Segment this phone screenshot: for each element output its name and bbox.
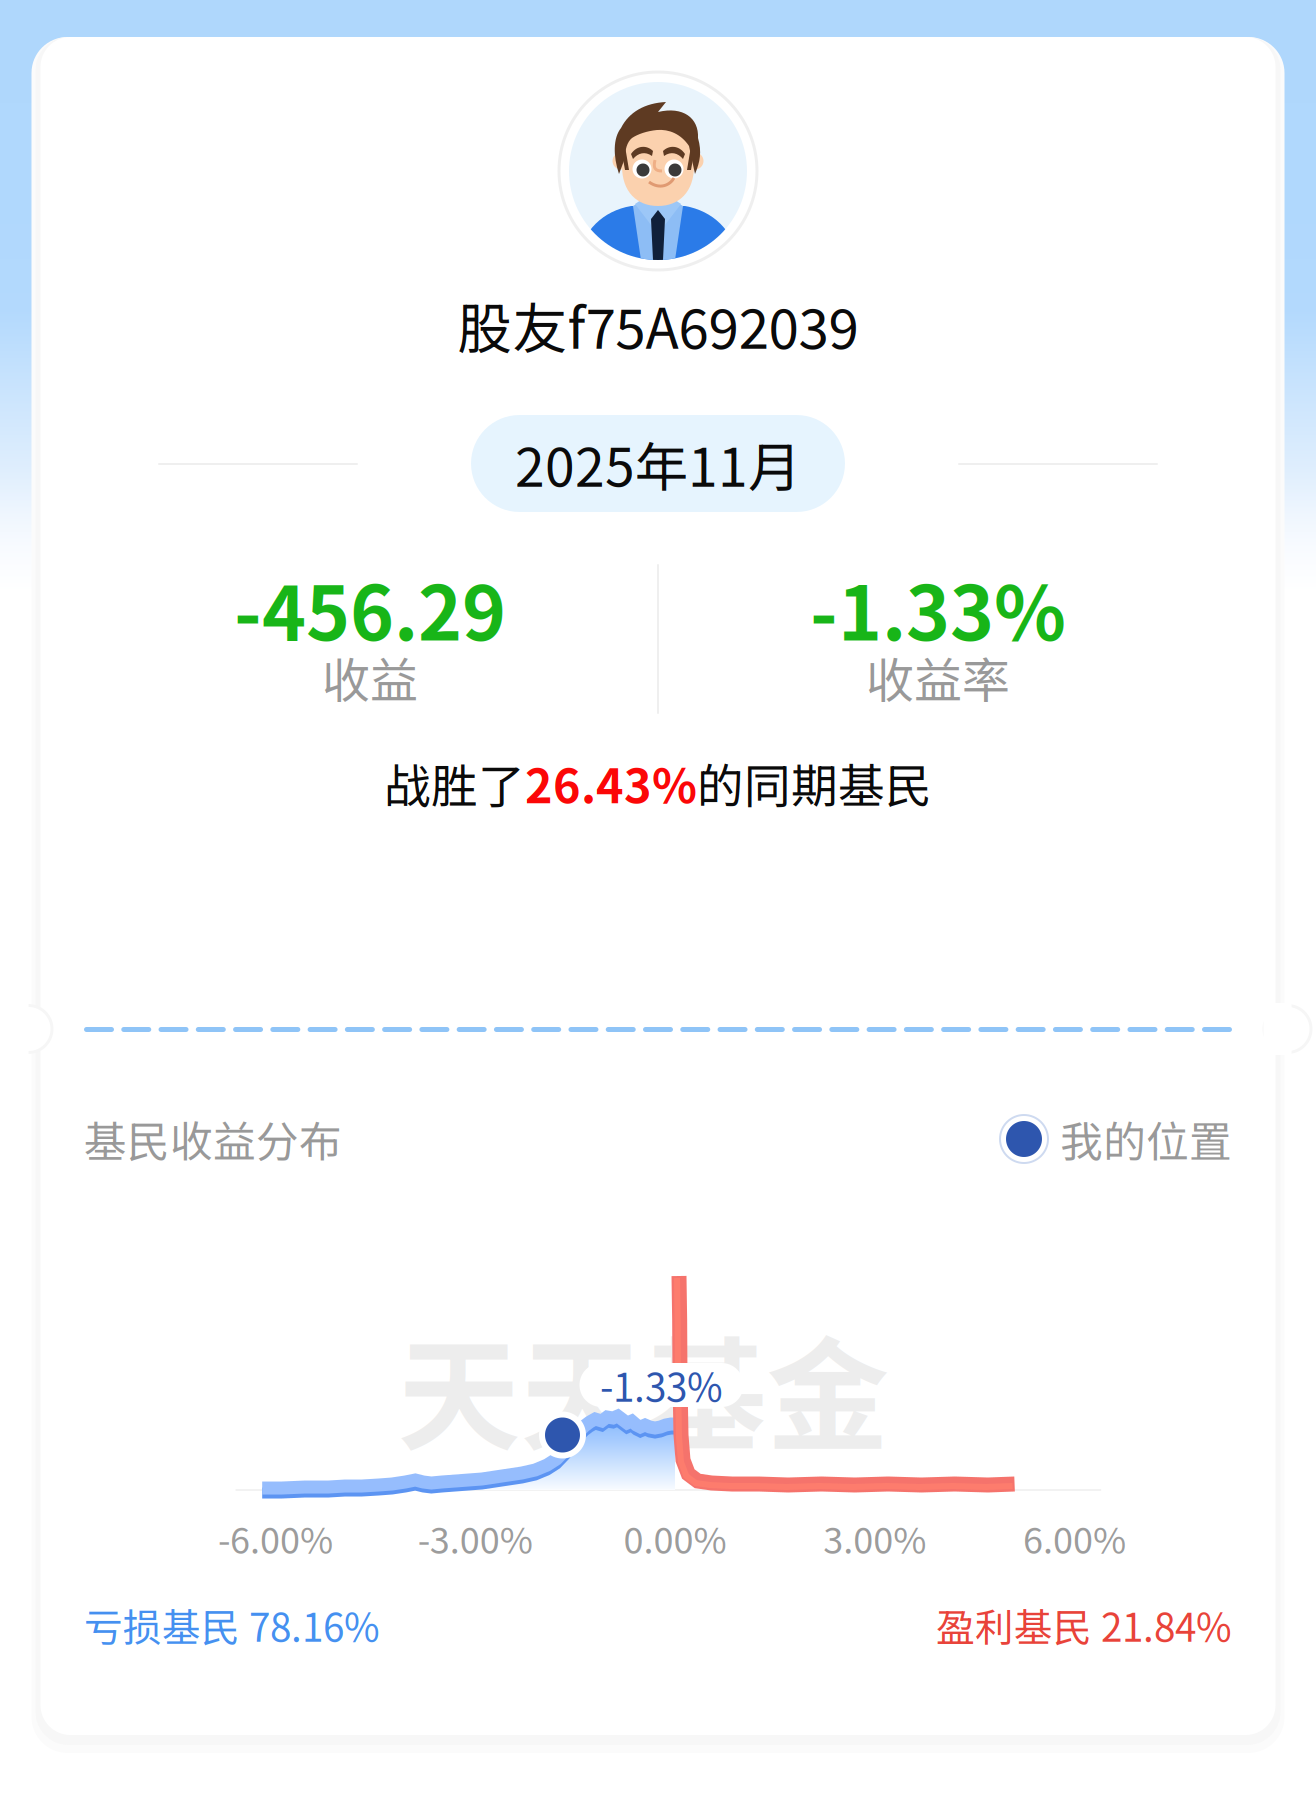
staticText: 3.00% bbox=[823, 1512, 926, 1564]
staticText: -3.00% bbox=[418, 1512, 533, 1564]
staticText: 盈利基民 21.84% bbox=[936, 1597, 1232, 1653]
staticText: 基民收益分布 bbox=[84, 1108, 342, 1170]
staticText: -1.33% bbox=[810, 554, 1066, 662]
staticText: 天天基金 bbox=[397, 1298, 889, 1476]
staticText: 的同期基民 bbox=[697, 749, 932, 817]
staticText: 26.43% bbox=[525, 749, 697, 817]
staticText: 2025年11月 bbox=[515, 425, 801, 502]
staticText: 6.00% bbox=[1023, 1512, 1126, 1564]
staticText: 0.00% bbox=[623, 1512, 726, 1564]
staticText: 亏损基民 78.16% bbox=[84, 1597, 380, 1653]
staticText: 股友f75A692039 bbox=[457, 285, 858, 365]
staticText: -6.00% bbox=[218, 1512, 333, 1564]
staticText: 战胜了 bbox=[384, 749, 525, 817]
staticText: 我的位置 bbox=[1060, 1108, 1232, 1170]
staticText: -456.29 bbox=[234, 554, 506, 662]
staticText: 收益率 bbox=[866, 642, 1010, 712]
staticText: -1.33% bbox=[600, 1357, 723, 1413]
staticText: 收益 bbox=[322, 642, 418, 712]
